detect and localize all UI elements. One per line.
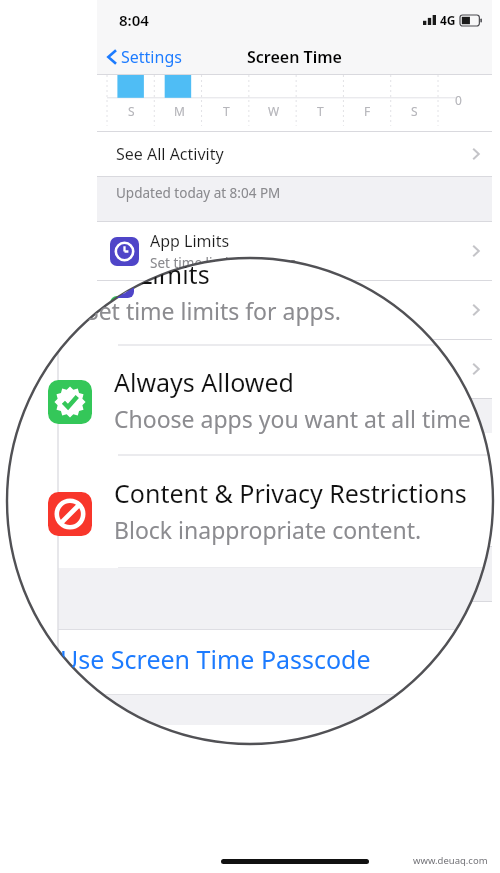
staticText: Use Screen Time Passcode xyxy=(116,444,315,466)
staticText: Choose apps you want at all times. xyxy=(150,313,370,331)
staticText: Screen Time xyxy=(247,46,342,68)
staticText: 4G xyxy=(440,12,456,28)
staticText: T xyxy=(317,103,324,119)
staticText: Settings xyxy=(121,46,182,68)
staticText: You can enable this on any device signed… xyxy=(116,555,451,591)
staticText: Share Across Devices xyxy=(116,512,434,534)
staticText: T xyxy=(223,103,230,119)
button[interactable]: Use Screen Time Passcode xyxy=(97,433,492,477)
staticText: 8:04 xyxy=(119,10,149,30)
staticText: W xyxy=(268,103,280,119)
button[interactable]: Use Screen Time Passcode xyxy=(60,642,371,676)
staticText: App Limits xyxy=(150,230,230,252)
staticText: Set time limits for apps. xyxy=(150,254,300,272)
button[interactable]: Settings xyxy=(107,46,182,68)
staticText: Always Allowed xyxy=(114,365,294,399)
staticText: Set time limits for apps. xyxy=(86,295,341,326)
staticText: www.deuaq.com xyxy=(413,854,488,867)
staticText: Content & Privacy Restrictions xyxy=(114,476,467,510)
staticText: Turn Off Screen Time xyxy=(116,613,275,635)
button[interactable]: Content & Privacy Restrictions xyxy=(97,340,492,398)
button[interactable]: Always Allowed xyxy=(114,365,471,434)
button[interactable]: Content & Privacy Restrictions xyxy=(114,476,467,545)
staticText: 0 xyxy=(455,92,462,108)
button[interactable]: App Limits xyxy=(86,257,341,326)
staticText: S xyxy=(411,103,418,119)
staticText: S xyxy=(128,103,135,119)
button[interactable]: Turn Off Screen Time xyxy=(97,602,492,873)
staticText: Choose apps you want at all time xyxy=(114,403,471,434)
staticText: F xyxy=(364,103,371,119)
button[interactable]: Always Allowed xyxy=(97,281,492,339)
button[interactable]: App Limits xyxy=(97,222,492,280)
staticText: M xyxy=(174,103,185,119)
staticText: App Limits xyxy=(86,257,210,291)
button[interactable]: See All Activity xyxy=(97,132,492,176)
staticText: Use Screen Time Passcode xyxy=(60,642,371,676)
staticText: See All Activity xyxy=(116,143,224,165)
staticText: Updated today at 8:04 PM xyxy=(116,184,281,202)
staticText: Block inappropriate content. xyxy=(150,372,331,390)
staticText: Always Allowed xyxy=(150,289,266,311)
button[interactable]: Share Across Devices xyxy=(97,500,492,546)
staticText: Block inappropriate content. xyxy=(114,514,422,545)
